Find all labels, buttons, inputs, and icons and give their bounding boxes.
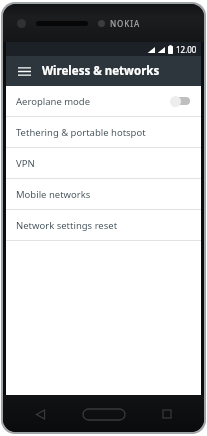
- staticText: NOKIA: [110, 18, 141, 29]
- staticText: 12.00: [176, 44, 197, 55]
- staticText: Wireless & networks: [42, 63, 160, 79]
- staticText: Aeroplane mode: [16, 95, 170, 108]
- staticText: Tethering & portable hotspot: [16, 126, 192, 139]
- button[interactable]: Tethering & portable hotspot: [6, 117, 201, 147]
- button[interactable]: Home: [83, 403, 125, 425]
- button[interactable]: Back: [29, 403, 51, 425]
- button[interactable]: Mobile networks: [6, 179, 201, 209]
- button[interactable]: Recent apps: [156, 403, 178, 425]
- button[interactable]: Open navigation menu: [12, 59, 36, 83]
- button[interactable]: Aeroplane mode: [6, 86, 201, 116]
- button[interactable]: VPN: [6, 148, 201, 178]
- staticText: VPN: [16, 157, 192, 170]
- staticText: Network settings reset: [16, 219, 192, 232]
- staticText: Mobile networks: [16, 188, 192, 201]
- button[interactable]: Network settings reset: [6, 210, 201, 240]
